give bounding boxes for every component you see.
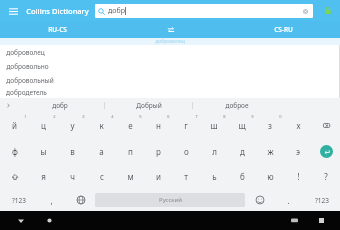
staticText: CS-RU <box>274 25 293 34</box>
button[interactable]: т <box>172 164 200 189</box>
button[interactable]: Premium lock <box>320 3 335 18</box>
button[interactable]: ю <box>256 164 284 189</box>
staticText: Русский <box>159 196 182 204</box>
staticText: 9 <box>251 114 254 119</box>
staticText: н <box>156 120 161 131</box>
button[interactable]: п <box>116 138 144 164</box>
button[interactable]: с <box>87 164 116 189</box>
button[interactable]: Open navigation menu <box>5 3 21 19</box>
staticText: 2 <box>53 114 56 119</box>
staticText: ж <box>267 146 274 157</box>
staticText: р <box>156 146 161 157</box>
button[interactable]: Recent apps <box>313 212 330 229</box>
button[interactable]: б <box>228 164 256 189</box>
staticText: 5 <box>139 114 142 119</box>
button[interactable]: о <box>172 138 200 164</box>
staticText: 7 <box>195 114 198 119</box>
staticText: д <box>240 146 245 157</box>
button[interactable]: ?123 <box>303 189 340 211</box>
staticText: о <box>184 146 189 157</box>
button[interactable]: ж <box>256 138 284 164</box>
button[interactable]: л <box>200 138 228 164</box>
button[interactable]: Добрый <box>105 98 192 112</box>
button[interactable]: ч <box>58 164 87 189</box>
staticText: ! <box>297 171 300 182</box>
button[interactable]: добр <box>16 98 104 112</box>
staticText: ?123 <box>12 196 26 205</box>
button[interactable]: Period <box>274 189 303 211</box>
button[interactable]: добр <box>95 4 313 18</box>
button[interactable]: и <box>144 164 172 189</box>
button[interactable]: щ <box>228 112 256 138</box>
button[interactable]: доброволец <box>0 45 340 59</box>
button[interactable]: Swap languages <box>114 21 227 38</box>
button[interactable]: Clear search <box>301 7 310 16</box>
button[interactable]: RU-CS <box>0 21 114 38</box>
staticText: в <box>70 146 75 157</box>
staticText: у <box>70 120 75 131</box>
button[interactable]: More suggestions <box>0 98 16 112</box>
button[interactable]: ш <box>200 112 228 138</box>
button[interactable]: ! <box>284 164 312 189</box>
staticText: 3 <box>82 114 85 119</box>
button[interactable]: добровольный <box>0 73 340 87</box>
button[interactable]: Comma <box>37 189 66 211</box>
button[interactable]: CS-RU <box>227 21 340 38</box>
button[interactable]: ц <box>29 112 58 138</box>
button[interactable]: у <box>58 112 87 138</box>
staticText: . <box>287 195 290 206</box>
staticText: доброволец <box>155 38 185 45</box>
button[interactable]: н <box>144 112 172 138</box>
staticText: RU-CS <box>48 25 67 34</box>
staticText: ш <box>210 120 218 131</box>
button[interactable]: ?123 <box>0 189 37 211</box>
staticText: б <box>240 171 245 182</box>
staticText: 1 <box>24 114 27 119</box>
staticText: з <box>268 120 272 131</box>
button[interactable]: ? <box>312 164 340 189</box>
staticText: к <box>99 120 104 131</box>
button[interactable]: Home <box>41 212 58 229</box>
button[interactable]: э <box>284 138 312 164</box>
button[interactable]: д <box>228 138 256 164</box>
button[interactable]: Enter <box>312 138 340 164</box>
button[interactable]: ь <box>200 164 228 189</box>
button[interactable]: в <box>58 138 87 164</box>
staticText: а <box>99 146 104 157</box>
staticText: 8 <box>223 114 226 119</box>
staticText: , <box>50 195 53 206</box>
staticText: м <box>127 171 134 182</box>
button[interactable]: добродетель <box>0 87 340 98</box>
button[interactable]: й <box>0 112 29 138</box>
staticText: л <box>212 146 217 157</box>
staticText: 0 <box>279 114 282 119</box>
button[interactable]: Русский <box>95 193 245 207</box>
staticText: ц <box>41 120 46 131</box>
staticText: Collins Dictionary <box>26 6 89 16</box>
button[interactable]: Back <box>12 212 29 229</box>
button[interactable]: Change keyboard language <box>66 189 95 211</box>
button[interactable]: г <box>172 112 200 138</box>
staticText: т <box>184 171 188 182</box>
button[interactable]: Emoji <box>245 189 274 211</box>
button[interactable]: м <box>116 164 144 189</box>
button[interactable]: Backspace <box>312 112 340 138</box>
button[interactable]: я <box>29 164 58 189</box>
staticText: добр <box>52 101 68 110</box>
button[interactable]: ы <box>29 138 58 164</box>
button[interactable]: е <box>116 112 144 138</box>
staticText: Добрый <box>136 101 162 110</box>
button[interactable]: ф <box>0 138 29 164</box>
button[interactable]: р <box>144 138 172 164</box>
button[interactable]: х <box>284 112 312 138</box>
button[interactable]: з <box>256 112 284 138</box>
button[interactable]: добровольно <box>0 59 340 73</box>
button[interactable]: а <box>87 138 116 164</box>
button[interactable]: доброе <box>193 98 280 112</box>
button[interactable]: Shift <box>0 164 29 189</box>
button[interactable]: к <box>87 112 116 138</box>
button[interactable]: Hide keyboard <box>286 212 303 229</box>
staticText: и <box>156 171 161 182</box>
staticText: доброволец <box>6 48 45 57</box>
staticText: добровольный <box>6 76 54 85</box>
